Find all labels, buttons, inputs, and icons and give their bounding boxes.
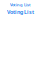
staticText: Voting List xyxy=(10,2,31,7)
staticText: Voting List xyxy=(7,8,34,15)
